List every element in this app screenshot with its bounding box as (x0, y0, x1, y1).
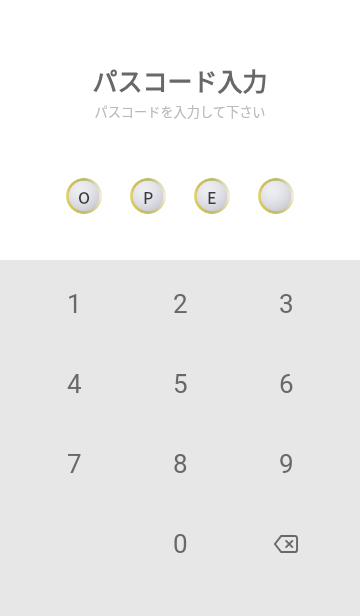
staticText: O (78, 185, 91, 208)
button[interactable]: P (130, 178, 166, 214)
button[interactable]: 9 (254, 432, 318, 496)
staticText: P (143, 185, 154, 208)
button[interactable]: 7 (42, 432, 106, 496)
button[interactable] (258, 178, 294, 214)
button[interactable]: 3 (254, 272, 318, 336)
staticText: 8 (173, 449, 188, 479)
staticText: パスコードを入力して下さい (94, 102, 266, 121)
button[interactable]: 1 (42, 272, 106, 336)
button[interactable]: 5 (148, 352, 212, 416)
button[interactable]: 8 (148, 432, 212, 496)
staticText: 3 (279, 289, 294, 319)
staticText: 0 (173, 529, 188, 559)
staticText: 6 (279, 369, 294, 399)
button[interactable]: 4 (42, 352, 106, 416)
staticText: 4 (67, 369, 82, 399)
button[interactable]: O (66, 178, 102, 214)
button[interactable]: E (194, 178, 230, 214)
staticText: 1 (67, 289, 82, 319)
staticText: パスコード入力 (92, 62, 268, 98)
staticText: 5 (173, 369, 188, 399)
button[interactable]: 6 (254, 352, 318, 416)
button[interactable]: Backspace (254, 512, 318, 576)
staticText: 2 (173, 289, 188, 319)
staticText: 9 (279, 449, 294, 479)
button[interactable]: 0 (148, 512, 212, 576)
staticText: 7 (67, 449, 82, 479)
button[interactable]: 2 (148, 272, 212, 336)
staticText: E (207, 185, 217, 208)
